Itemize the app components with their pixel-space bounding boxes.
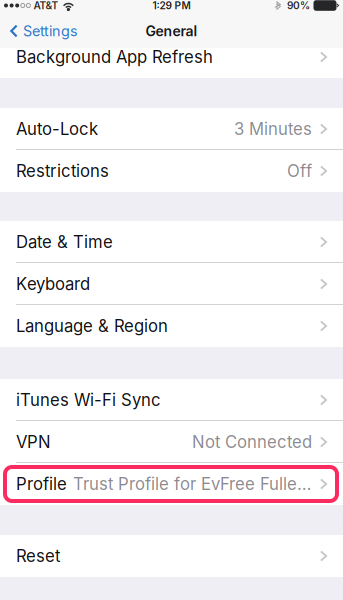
button[interactable]: VPN (0, 421, 343, 463)
button[interactable]: Keyboard (0, 263, 343, 305)
staticText: Off (287, 161, 312, 181)
staticText: Language & Region (16, 316, 168, 336)
staticText: Not Connected (192, 432, 312, 452)
button[interactable]: Settings (0, 11, 88, 48)
button[interactable]: Profile (0, 463, 343, 505)
button[interactable]: Auto-Lock (0, 108, 343, 150)
staticText: Profile (16, 474, 67, 494)
button[interactable]: Background App Refresh (0, 36, 343, 78)
staticText: General (145, 23, 197, 40)
staticText: 3 Minutes (234, 119, 312, 139)
button[interactable]: iTunes Wi-Fi Sync (0, 379, 343, 421)
staticText: Background App Refresh (16, 47, 213, 67)
staticText: Keyboard (16, 274, 90, 294)
staticText: AT&T (33, 0, 58, 12)
staticText: Date & Time (16, 232, 113, 252)
staticText: Settings (23, 22, 78, 40)
staticText: Trust Profile for EvFree Fullert… (73, 474, 314, 494)
staticText: iTunes Wi-Fi Sync (16, 390, 161, 410)
staticText: Reset (16, 546, 60, 566)
button[interactable]: Date & Time (0, 221, 343, 263)
button[interactable]: Language & Region (0, 305, 343, 347)
staticText: Auto-Lock (16, 119, 98, 139)
staticText: 90% (287, 0, 310, 12)
staticText: VPN (16, 432, 51, 452)
button[interactable]: Restrictions (0, 150, 343, 192)
staticText: 1:29 PM (152, 0, 190, 12)
staticText: Restrictions (16, 161, 109, 181)
button[interactable]: Reset (0, 535, 343, 577)
